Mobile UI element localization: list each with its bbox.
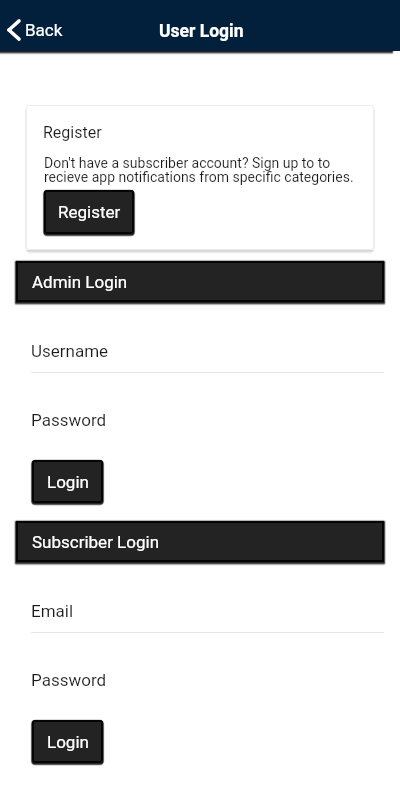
staticText: Register <box>58 202 121 222</box>
button[interactable]: Subscriber Login <box>16 521 384 562</box>
button[interactable]: Register <box>44 190 134 234</box>
staticText: Password <box>31 410 107 430</box>
staticText: Login <box>47 472 89 492</box>
staticText: Back <box>25 20 63 40</box>
button[interactable]: Login <box>32 720 103 763</box>
button[interactable]: Admin Login <box>16 261 384 302</box>
staticText: Username <box>31 341 109 361</box>
staticText: Email <box>31 601 74 621</box>
staticText: User Login <box>159 21 244 42</box>
staticText: Password <box>31 670 107 690</box>
staticText: Admin Login <box>32 272 128 292</box>
button[interactable]: Back <box>2 8 72 44</box>
button[interactable]: Login <box>32 460 103 503</box>
staticText: Register <box>43 123 102 142</box>
staticText: Don't have a subscriber account? Sign up… <box>44 155 358 186</box>
staticText: Subscriber Login <box>32 532 160 552</box>
staticText: Login <box>47 732 89 752</box>
